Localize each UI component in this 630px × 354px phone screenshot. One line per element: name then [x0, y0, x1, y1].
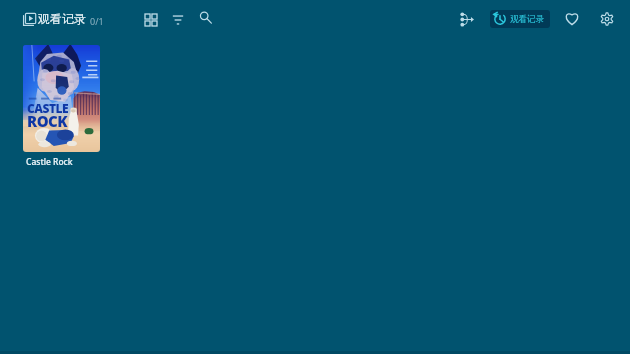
staticText: Castle Rock — [26, 156, 73, 168]
staticText: 观看记录 — [38, 11, 86, 26]
staticText: 0/1 — [90, 15, 104, 27]
button[interactable]: Merge — [456, 8, 478, 31]
staticText: CASTLE — [27, 100, 69, 116]
button[interactable]: Search — [195, 7, 216, 28]
button[interactable]: Filter — [168, 10, 188, 29]
button[interactable]: 观看记录 — [490, 10, 550, 28]
staticText: 观看记录 — [510, 14, 544, 25]
button[interactable]: CASTLE — [23, 45, 100, 152]
button[interactable]: Watch history library — [17, 8, 41, 32]
button[interactable]: Settings — [596, 8, 618, 30]
staticText: ROCK — [27, 111, 68, 131]
button[interactable]: Favorites — [560, 7, 584, 29]
button[interactable]: Grid view — [141, 10, 161, 30]
